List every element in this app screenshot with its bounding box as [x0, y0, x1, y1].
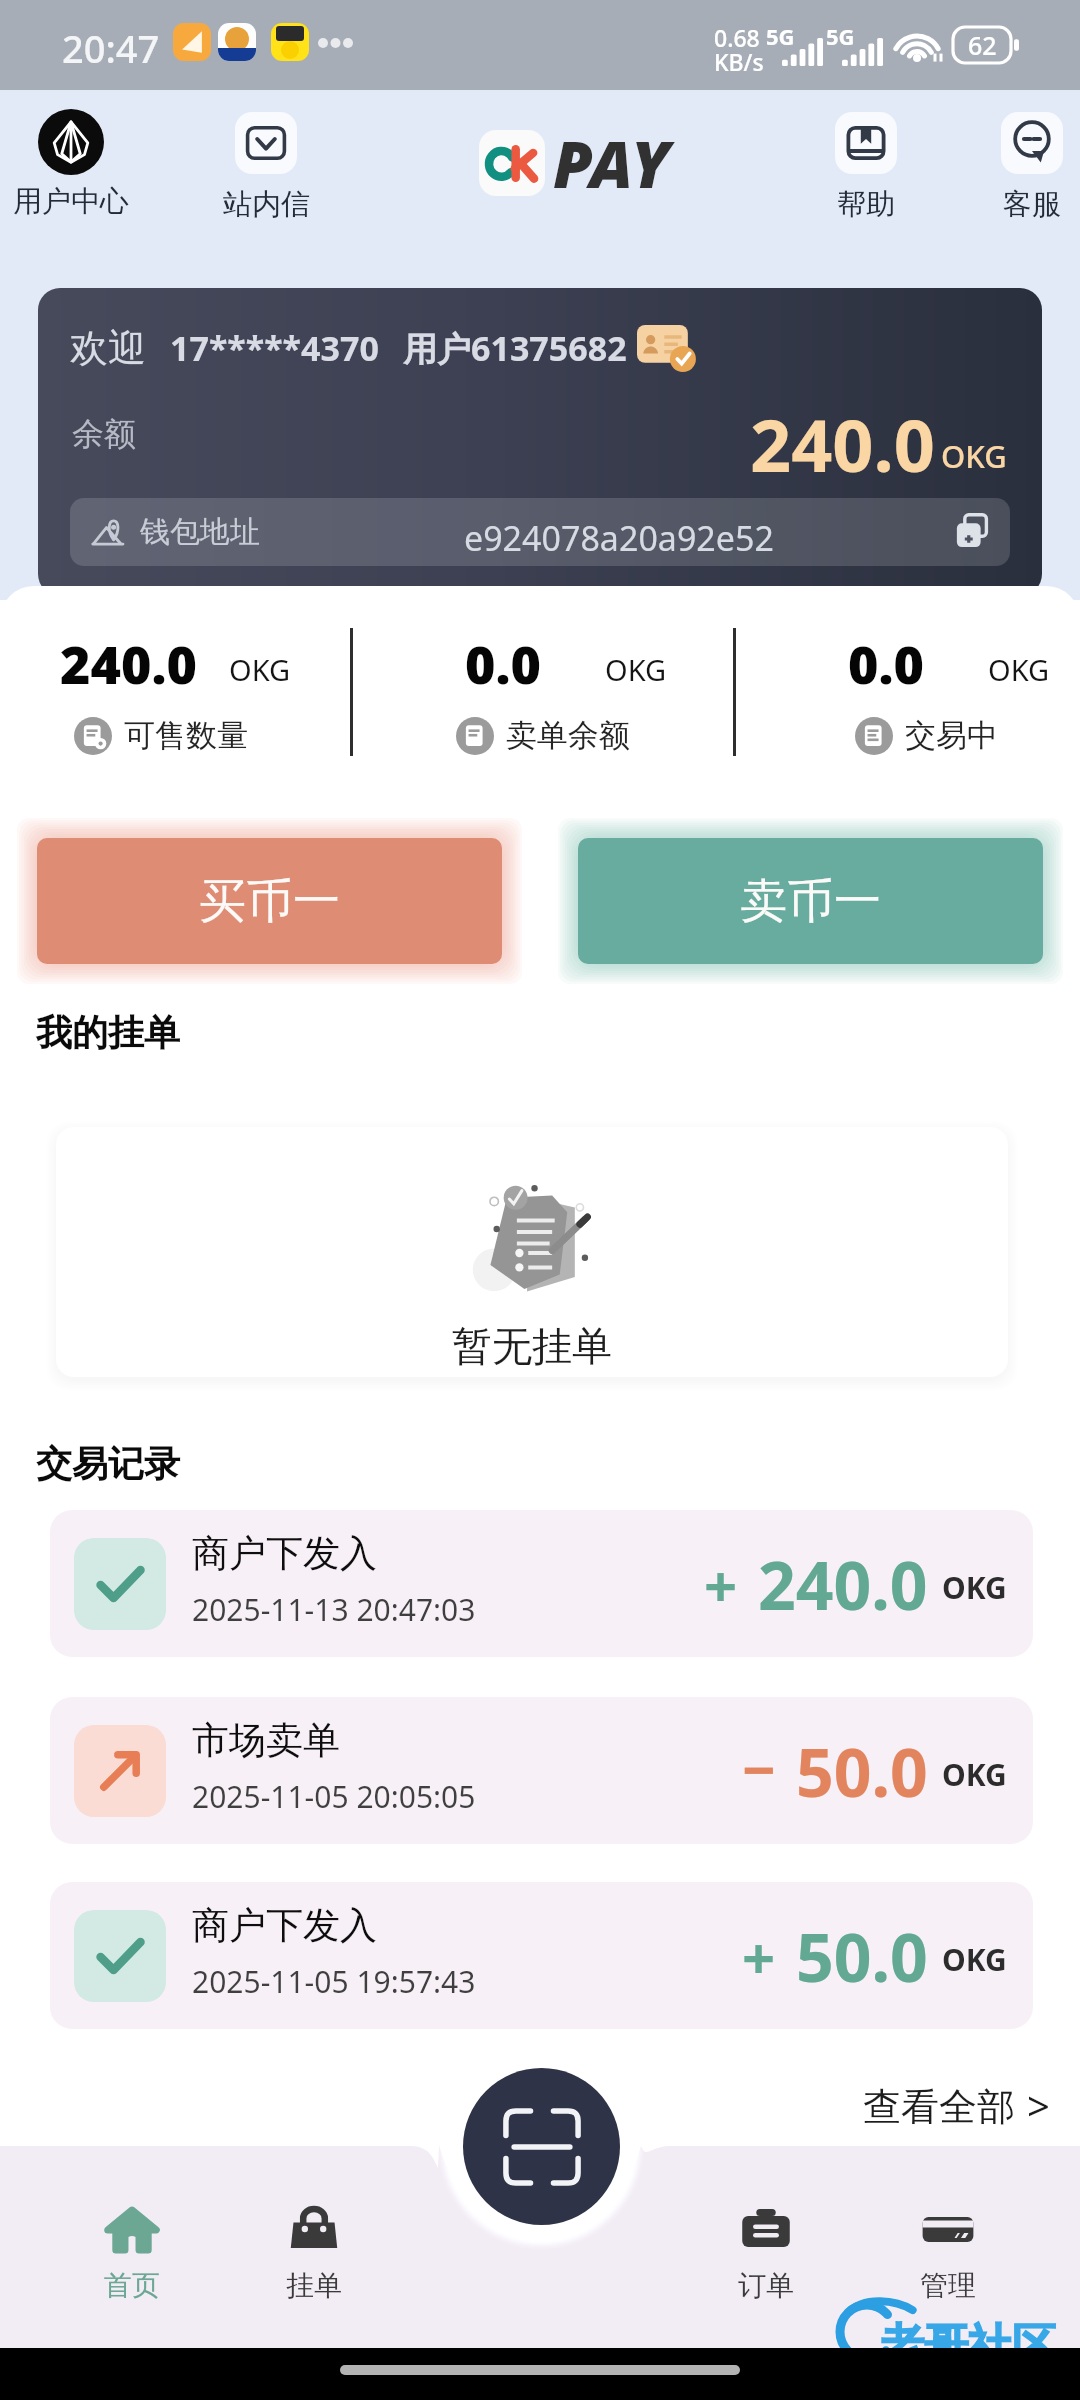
button[interactable]: 用户中心 — [5, 109, 137, 220]
staticText: + — [704, 1545, 738, 1624]
staticText: 卖币一 — [740, 872, 881, 931]
button[interactable]: 查看全部 — [863, 2080, 1050, 2134]
staticText: 暂无挂单 — [452, 1321, 612, 1371]
staticText: 0.0 — [848, 628, 924, 699]
staticText: 用户中心 — [13, 183, 129, 220]
staticText: − — [742, 1729, 776, 1808]
staticText: 可售数量 — [124, 716, 248, 755]
staticText: 62 — [968, 28, 997, 62]
staticText: OKG — [605, 650, 667, 689]
staticText: 站内信 — [223, 186, 310, 223]
staticText: 挂单 — [286, 2268, 342, 2303]
staticText: 我的挂单 — [36, 1010, 180, 1055]
staticText: 240.0 — [60, 628, 197, 699]
staticText: 17*****4370 — [170, 325, 379, 371]
staticText: 5G — [826, 21, 855, 51]
staticText: 管理 — [920, 2268, 976, 2303]
button[interactable]: 卖币一 — [578, 838, 1043, 964]
button[interactable]: 挂单 — [244, 2204, 384, 2303]
staticText: 2025-11-13 20:47:03 — [192, 1589, 476, 1630]
staticText: 余额 — [72, 414, 136, 454]
staticText: 查看全部 — [863, 2083, 1015, 2131]
button[interactable]: 可售数量 — [74, 716, 248, 755]
button[interactable]: 商户下发入 — [50, 1510, 1033, 1657]
staticText: 50.0 — [796, 1911, 928, 2001]
staticText: 首页 — [104, 2268, 160, 2303]
button[interactable]: 交易中 — [855, 716, 998, 755]
staticText: 商户下发入 — [192, 1902, 377, 1949]
button[interactable]: 帮助 — [800, 112, 932, 223]
staticText: OKG — [942, 1939, 1007, 1980]
button[interactable]: 扫一扫 — [463, 2068, 620, 2225]
staticText: > — [1027, 2078, 1050, 2132]
button[interactable]: 卖单余额 — [456, 716, 630, 755]
staticText: 钱包地址 — [140, 513, 260, 551]
button[interactable]: 暂无挂单 — [56, 1127, 1008, 1377]
staticText: 客服 — [1003, 186, 1061, 223]
button[interactable]: 买币一 — [37, 838, 502, 964]
staticText: 帮助 — [837, 186, 895, 223]
staticText: 20:47 — [62, 22, 160, 74]
staticText: KB/s — [714, 46, 764, 77]
staticText: 交易记录 — [36, 1441, 180, 1486]
staticText: 订单 — [738, 2268, 794, 2303]
staticText: 老哥社区 — [880, 2318, 1056, 2373]
button[interactable]: 管理 — [878, 2204, 1018, 2303]
staticText: 50.0 — [796, 1726, 928, 1816]
button[interactable]: PAY — [553, 120, 670, 207]
staticText: OKG — [988, 650, 1050, 689]
staticText: 0.68 — [714, 22, 760, 53]
staticText: 商户下发入 — [192, 1530, 377, 1577]
staticText: 市场卖单 — [192, 1717, 340, 1764]
staticText: OKG — [942, 1567, 1007, 1608]
staticText: 2025-11-05 20:05:05 — [192, 1776, 476, 1817]
button[interactable]: 钱包地址 — [70, 498, 1010, 566]
button[interactable]: 市场卖单 — [50, 1697, 1033, 1844]
button[interactable]: OK Pay — [479, 130, 545, 196]
button[interactable]: 订单 — [696, 2204, 836, 2303]
staticText: 欢迎 — [70, 324, 146, 372]
staticText: 卖单余额 — [506, 716, 630, 755]
staticText: 交易中 — [905, 716, 998, 755]
button[interactable]: 客服 — [966, 112, 1080, 223]
button[interactable]: 站内信 — [200, 112, 332, 223]
staticText: OKG — [941, 435, 1007, 477]
staticText: 240.0 — [758, 1539, 928, 1629]
other: 复制钱包地址 — [954, 514, 990, 550]
staticText: 2025-11-05 19:57:43 — [192, 1961, 476, 2002]
staticText: e924078a20a92e52 — [464, 515, 774, 561]
button[interactable]: 首页 — [62, 2204, 202, 2303]
button[interactable]: 商户下发入 — [50, 1882, 1033, 2029]
staticText: OKG — [942, 1754, 1007, 1795]
button[interactable]: 欢迎 — [38, 288, 1042, 596]
staticText: 买币一 — [199, 872, 340, 931]
staticText: + — [742, 1917, 776, 1996]
staticText: 用户61375682 — [403, 325, 627, 371]
staticText: 240.0 — [750, 395, 935, 493]
staticText: OKG — [229, 650, 291, 689]
staticText: 5G — [766, 21, 795, 51]
staticText: 0.0 — [465, 628, 541, 699]
